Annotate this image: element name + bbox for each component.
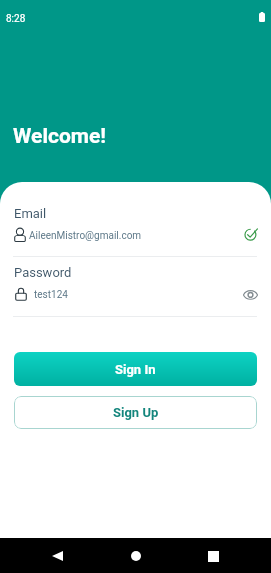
button[interactable]: Email verified [244, 227, 258, 241]
button[interactable]: Show password [243, 286, 258, 302]
staticText: Welcome! [13, 124, 107, 149]
button[interactable]: Sign In [14, 352, 257, 386]
staticText: 8:28 [6, 13, 26, 25]
button[interactable]: Home [119, 539, 153, 573]
button[interactable]: Recent apps [196, 539, 230, 573]
staticText: Sign In [115, 362, 156, 377]
button[interactable]: Sign Up [14, 396, 257, 429]
button[interactable]: Back [40, 539, 74, 573]
staticText: Email [14, 206, 47, 221]
staticText: Password [14, 265, 72, 280]
staticText: AileenMistro@gmail.com [29, 230, 142, 242]
staticText: Sign Up [113, 405, 159, 420]
staticText: test124 [34, 289, 68, 301]
